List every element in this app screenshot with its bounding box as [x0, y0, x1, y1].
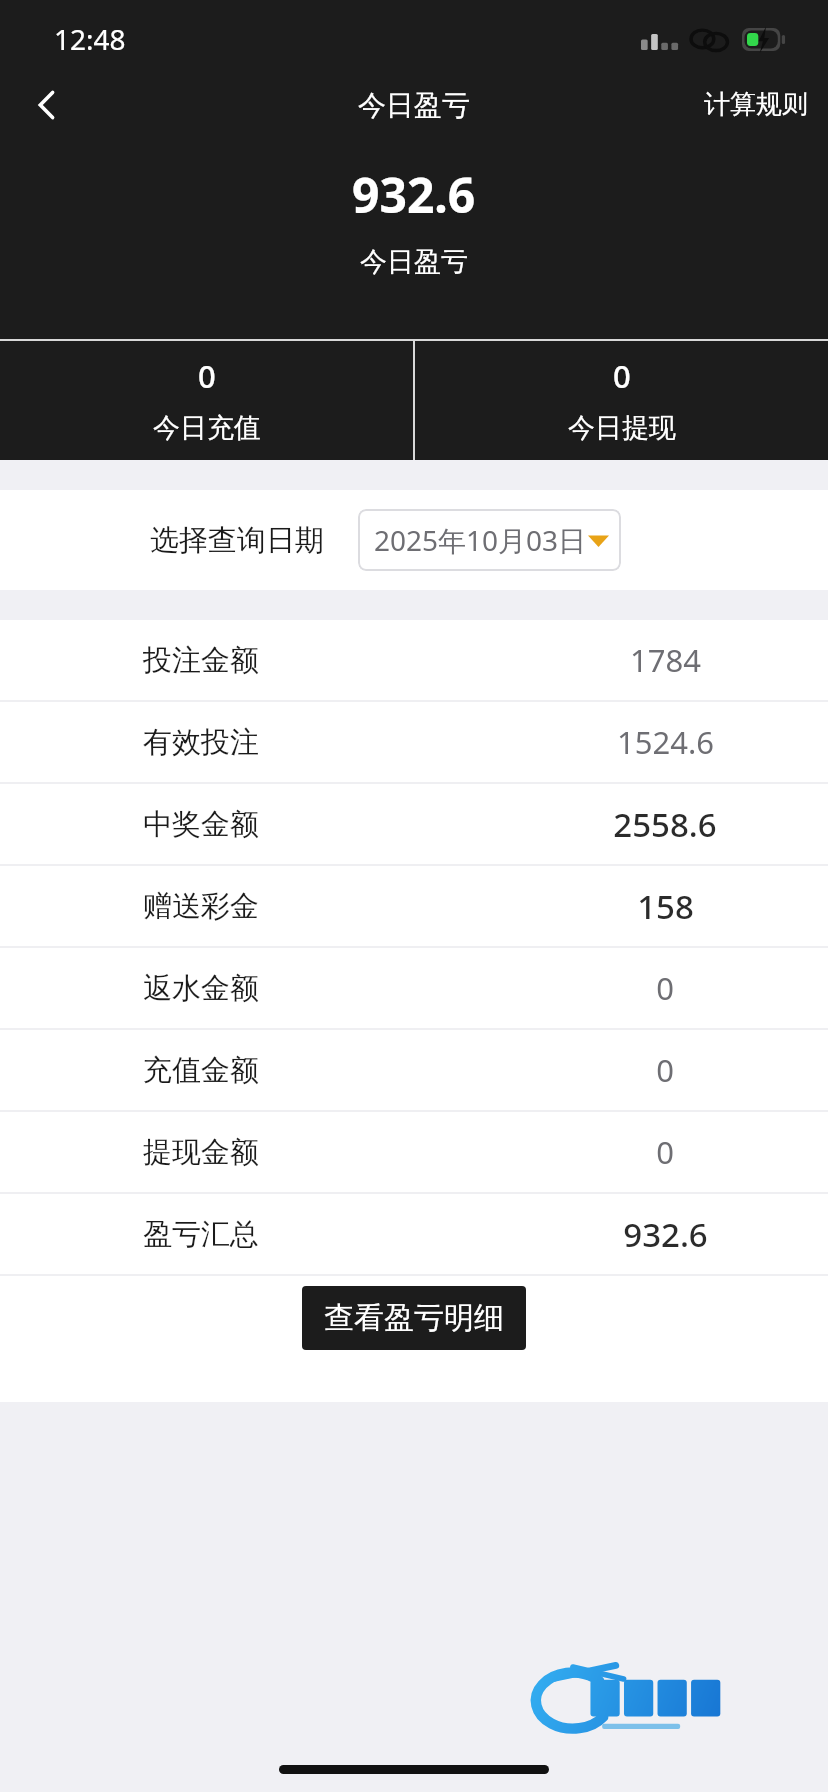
- staticText: 0: [656, 1049, 674, 1091]
- button[interactable]: 投注金额: [0, 620, 828, 700]
- button[interactable]: 中奖金额: [0, 784, 828, 864]
- button[interactable]: 查看盈亏明细: [302, 1286, 526, 1350]
- staticText: 2558.6: [613, 802, 717, 847]
- staticText: 今日提现: [568, 411, 676, 445]
- staticText: 0: [198, 355, 216, 397]
- staticText: 盈亏汇总: [143, 1216, 259, 1253]
- staticText: 投注金额: [143, 642, 259, 679]
- button[interactable]: 有效投注: [0, 702, 828, 782]
- staticText: 返水金额: [143, 970, 259, 1007]
- staticText: 提现金额: [143, 1134, 259, 1171]
- button[interactable]: 0: [415, 341, 828, 460]
- button[interactable]: 0: [0, 341, 413, 460]
- staticText: 赠送彩金: [143, 888, 259, 925]
- staticText: 中奖金额: [143, 806, 259, 843]
- staticText: 932.6: [623, 1212, 708, 1257]
- staticText: 158: [637, 884, 694, 929]
- staticText: 0: [656, 1131, 674, 1173]
- button[interactable]: 计算规则: [694, 80, 818, 129]
- staticText: 1784: [630, 639, 701, 681]
- staticText: 充值金额: [143, 1052, 259, 1089]
- staticText: 0: [613, 355, 631, 397]
- button[interactable]: 提现金额: [0, 1112, 828, 1192]
- staticText: 0: [656, 967, 674, 1009]
- staticText: 1524.6: [617, 721, 714, 763]
- button[interactable]: 赠送彩金: [0, 866, 828, 946]
- button[interactable]: 返水金额: [0, 948, 828, 1028]
- staticText: 今日充值: [153, 411, 261, 445]
- staticText: 12:48: [54, 20, 126, 58]
- button[interactable]: 2025年10月03日: [358, 509, 621, 571]
- staticText: 2025年10月03日: [374, 521, 587, 559]
- button[interactable]: 盈亏汇总: [0, 1194, 828, 1274]
- staticText: 今日盈亏: [360, 245, 468, 279]
- staticText: 计算规则: [704, 88, 808, 121]
- staticText: 932.6: [352, 162, 476, 227]
- staticText: 有效投注: [143, 724, 259, 761]
- button[interactable]: Back: [18, 76, 76, 134]
- button[interactable]: 充值金额: [0, 1030, 828, 1110]
- staticText: 选择查询日期: [150, 522, 324, 559]
- staticText: 今日盈亏: [358, 88, 470, 123]
- staticText: 查看盈亏明细: [324, 1299, 504, 1337]
